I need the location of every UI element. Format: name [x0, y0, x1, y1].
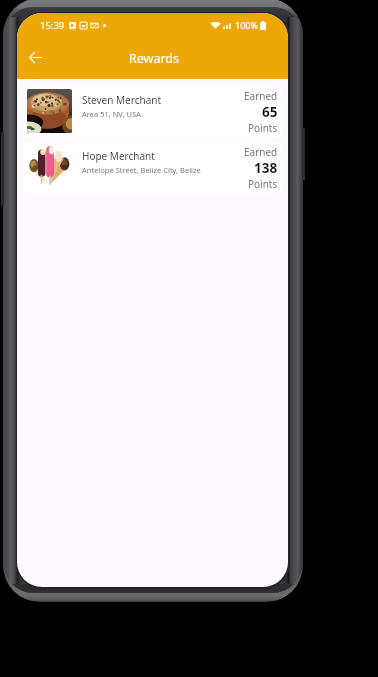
button[interactable]: Back: [21, 43, 49, 71]
staticText: Area 51, NV, USA: [82, 109, 141, 119]
staticText: Rewards: [129, 50, 180, 67]
staticText: Points: [248, 177, 278, 189]
staticText: Earned: [244, 89, 278, 103]
button[interactable]: Steven Merchant: [24, 86, 281, 138]
staticText: 15:39: [40, 19, 65, 32]
staticText: Points: [248, 121, 278, 133]
staticText: Hope Merchant: [82, 149, 155, 163]
staticText: 65: [262, 103, 278, 121]
button[interactable]: Hope Merchant: [24, 142, 281, 194]
staticText: 138: [254, 159, 278, 177]
staticText: Earned: [244, 145, 278, 159]
staticText: Steven Merchant: [82, 93, 162, 107]
staticText: Antelope Street, Belize City, Belize: [82, 165, 201, 175]
staticText: 100%: [235, 19, 258, 31]
